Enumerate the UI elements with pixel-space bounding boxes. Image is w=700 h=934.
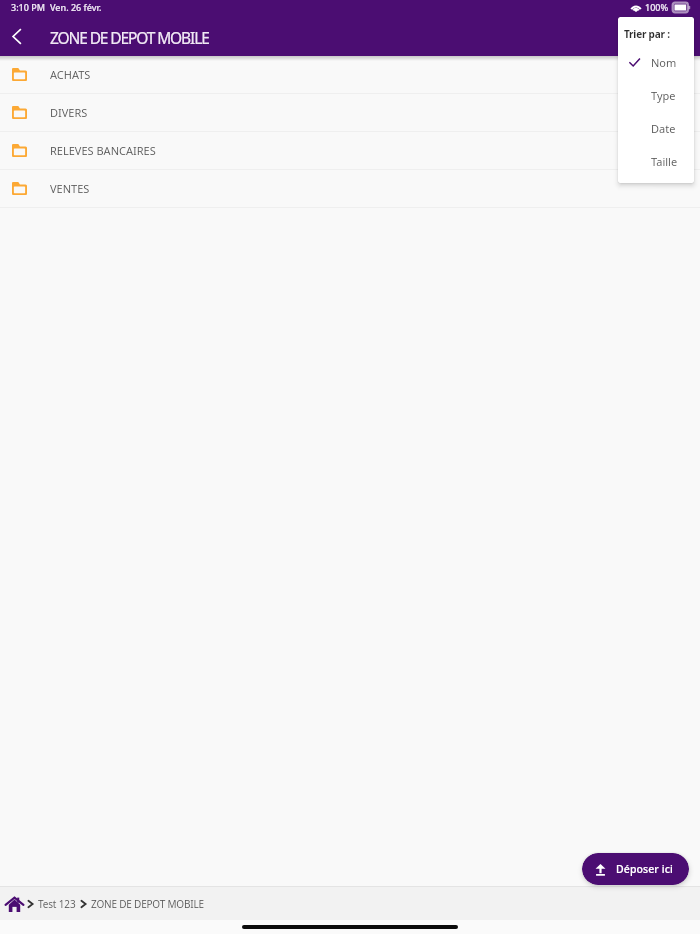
staticText: ACHATS (50, 67, 91, 82)
staticText: Ven. 26 févr. (50, 1, 102, 13)
button[interactable]: Déposer ici (582, 853, 689, 885)
button[interactable]: VENTES (0, 170, 700, 207)
staticText: ZONE DE DEPOT MOBILE (50, 27, 209, 48)
button[interactable]: Home (5, 896, 24, 912)
staticText: ZONE DE DEPOT MOBILE (91, 897, 204, 911)
button[interactable]: Nom (618, 46, 694, 79)
staticText: Taille (651, 154, 678, 169)
staticText: Type (651, 88, 676, 103)
staticText: Déposer ici (616, 862, 673, 876)
staticText: 100% (645, 1, 669, 13)
staticText: VENTES (50, 181, 90, 196)
button[interactable]: Type (618, 79, 694, 112)
staticText: Nom (651, 55, 677, 70)
button[interactable]: DIVERS (0, 94, 700, 131)
button[interactable]: Back (4, 24, 28, 48)
button[interactable]: Test 123 (38, 897, 76, 911)
button[interactable]: ACHATS (0, 56, 700, 93)
staticText: Date (651, 121, 676, 136)
staticText: RELEVES BANCAIRES (50, 143, 156, 158)
staticText: DIVERS (50, 105, 88, 120)
button[interactable]: RELEVES BANCAIRES (0, 132, 700, 169)
staticText: 3:10 PM (11, 1, 45, 13)
staticText: Trier par : (624, 27, 670, 41)
button[interactable]: Taille (618, 145, 694, 178)
button[interactable]: Date (618, 112, 694, 145)
